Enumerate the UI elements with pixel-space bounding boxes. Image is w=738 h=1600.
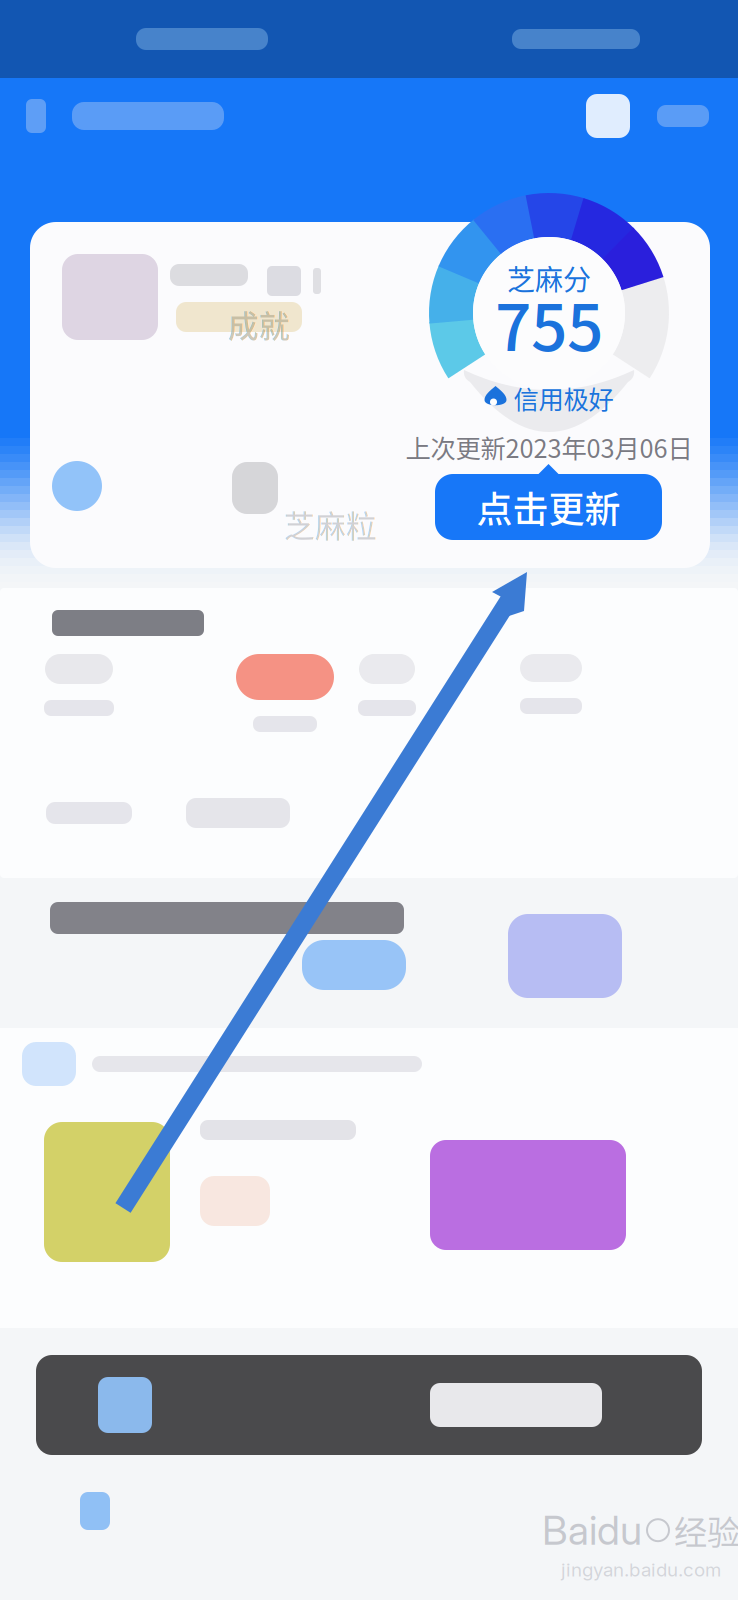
button[interactable]: 点击更新 — [435, 474, 662, 540]
staticText: 信用极好 — [513, 380, 613, 416]
staticText: Baidu — [542, 1506, 642, 1554]
button[interactable]: Send — [36, 1355, 236, 1455]
staticText: 755 — [495, 277, 603, 369]
button[interactable]: Profile photo — [50, 242, 170, 352]
button[interactable]: Sesame grains — [210, 448, 300, 528]
staticText: 成就 — [228, 302, 290, 346]
staticText: 经验 — [674, 1506, 738, 1554]
staticText: 点击更新 — [476, 481, 620, 533]
button[interactable]: Sesame credit — [32, 446, 122, 526]
button[interactable]: More — [644, 80, 722, 152]
button[interactable]: Back — [0, 80, 72, 152]
button[interactable]: Scan code — [572, 80, 644, 152]
button[interactable]: Keyboard — [36, 1355, 110, 1455]
button[interactable]: My QR code — [248, 254, 340, 308]
staticText: jingyan.baidu.com — [561, 1558, 721, 1581]
staticText: 上次更新2023年03月06日 — [405, 429, 692, 465]
staticText: 芝麻分 — [507, 258, 591, 298]
staticText: 芝麻粒 — [284, 502, 377, 546]
